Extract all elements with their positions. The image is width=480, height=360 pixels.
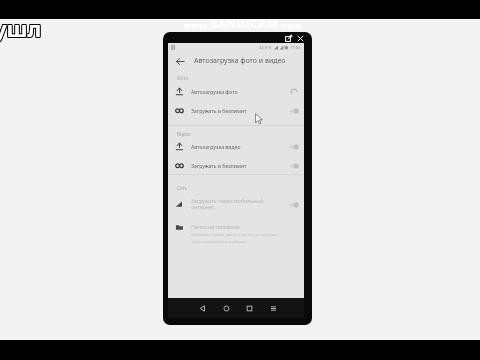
- button[interactable]: Recents: [241, 298, 257, 318]
- staticText: ушл: [0, 14, 41, 44]
- button[interactable]: Pop out: [282, 32, 294, 44]
- button[interactable]: Загружать через мобильный интернет: [168, 193, 304, 215]
- staticText: ушл: [0, 14, 43, 44]
- staticText: www.: [184, 20, 210, 32]
- staticText: 17:03: [290, 45, 301, 50]
- button[interactable]: Back: [173, 54, 187, 68]
- staticText: Сеть: [177, 185, 188, 191]
- button[interactable]: Автозагрузка фото: [168, 82, 304, 101]
- staticText: .com: [279, 20, 302, 32]
- button[interactable]: Автозагрузка видео: [168, 137, 304, 156]
- button[interactable]: Close: [294, 32, 306, 44]
- staticText: ушл: [0, 12, 43, 42]
- staticText: Загружать в безлимит: [191, 107, 289, 114]
- staticText: Видео: [177, 131, 191, 137]
- staticText: ушл: [0, 13, 42, 43]
- button[interactable]: Back: [194, 298, 210, 318]
- staticText: Папки на телефоне: [191, 223, 240, 230]
- staticText: Автозагрузка фото: [191, 88, 289, 95]
- staticText: ушл: [0, 13, 43, 43]
- staticText: 42,8 %: [259, 45, 272, 50]
- button[interactable]: Toggle: [289, 107, 299, 114]
- staticText: Автозагрузка фото и видео: [194, 56, 286, 66]
- staticText: Фото: [177, 75, 189, 81]
- button[interactable]: Загружать в безлимит: [168, 101, 304, 120]
- button[interactable]: Toggle: [289, 143, 299, 150]
- button[interactable]: Menu: [265, 298, 281, 318]
- button[interactable]: Папки на телефоне: [168, 221, 304, 246]
- button[interactable]: Loading: [289, 88, 299, 95]
- button[interactable]: Toggle: [289, 201, 299, 208]
- staticText: ушл: [0, 14, 42, 44]
- staticText: ушл: [0, 13, 41, 43]
- button[interactable]: Загружать в безлимит: [168, 156, 304, 175]
- staticText: BANDICAM: [210, 16, 279, 32]
- staticText: Загружать в безлимит: [191, 162, 289, 169]
- button[interactable]: Home: [218, 298, 234, 318]
- staticText: Выберите папки, фото и видео из которых …: [191, 232, 278, 244]
- staticText: Автозагрузка видео: [191, 143, 289, 150]
- staticText: Загружать через мобильный интернет: [191, 197, 289, 211]
- staticText: ушл: [0, 12, 42, 42]
- button[interactable]: Toggle: [289, 162, 299, 169]
- staticText: ушл: [0, 12, 41, 42]
